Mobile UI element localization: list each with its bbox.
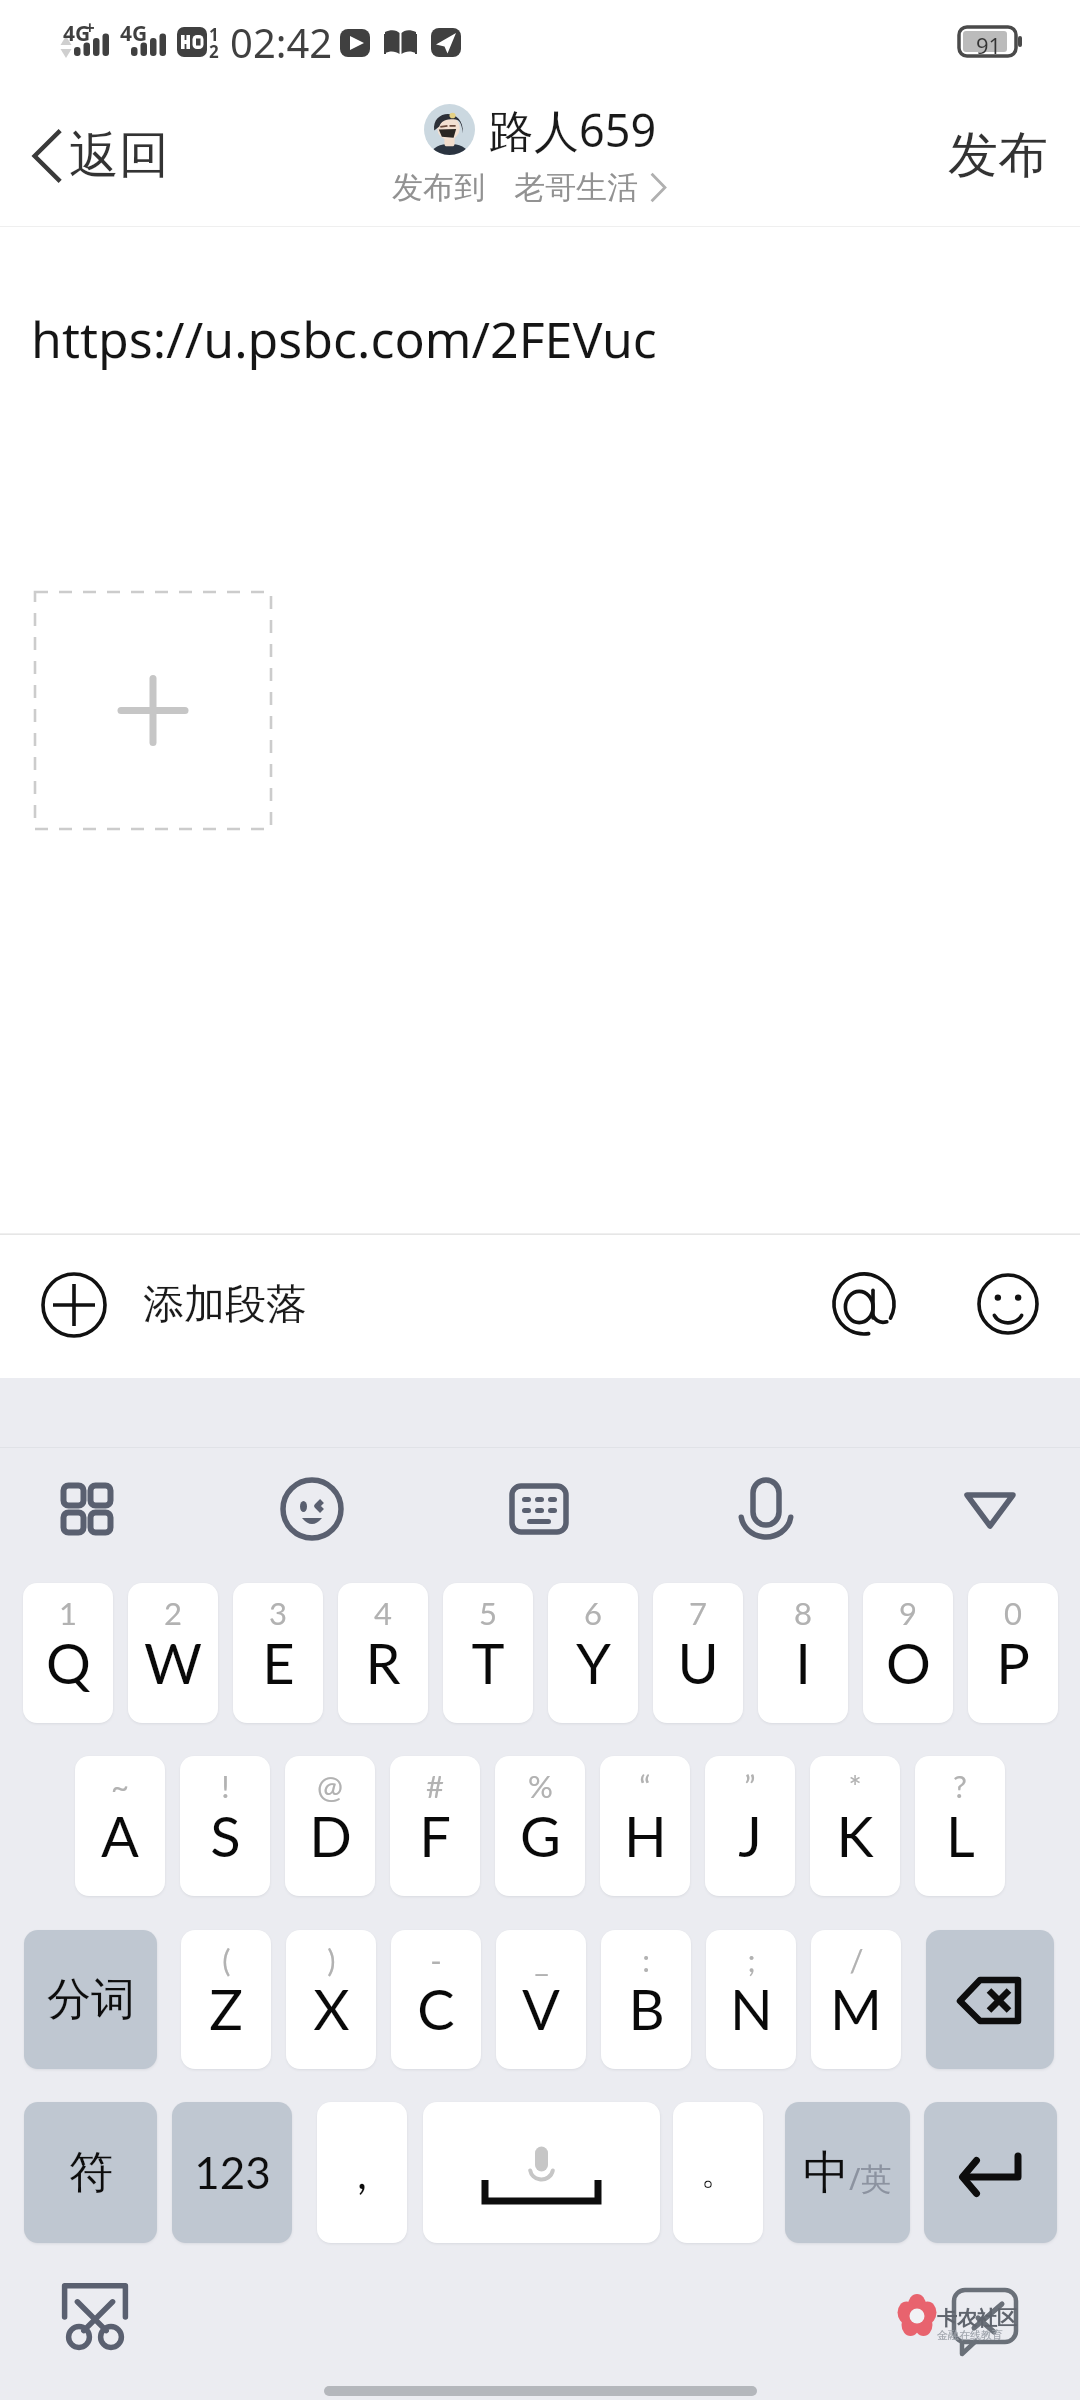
- staticText: 4G: [120, 19, 148, 48]
- button[interactable]: 符: [24, 2102, 157, 2243]
- staticText: S: [210, 1802, 241, 1869]
- staticText: A: [101, 1802, 139, 1869]
- button[interactable]: :: [601, 1930, 691, 2069]
- staticText: 老哥生活: [514, 168, 638, 207]
- button[interactable]: !: [180, 1756, 270, 1896]
- staticText: 符: [69, 2145, 113, 2200]
- button[interactable]: ?: [915, 1756, 1005, 1896]
- button[interactable]: ;: [706, 1930, 796, 2069]
- button[interactable]: Voice input: [721, 1402, 811, 1492]
- staticText: O: [886, 1629, 931, 1696]
- staticText: 02:42: [230, 15, 333, 69]
- staticText: ~: [111, 1767, 129, 1804]
- button[interactable]: 4: [338, 1583, 428, 1723]
- button[interactable]: 6: [548, 1583, 638, 1723]
- button[interactable]: [926, 1930, 1054, 2069]
- staticText: :: [642, 1941, 650, 1978]
- staticText: E: [262, 1629, 295, 1696]
- button[interactable]: [924, 2102, 1057, 2243]
- staticText: ): [327, 1941, 336, 1978]
- staticText: ;: [747, 1941, 756, 1978]
- button[interactable]: 3: [233, 1583, 323, 1723]
- button[interactable]: 5: [443, 1583, 533, 1723]
- staticText: 2: [164, 1594, 182, 1631]
- staticText: 发布到: [392, 168, 485, 207]
- button[interactable]: Emoji: [267, 1402, 357, 1492]
- staticText: K: [836, 1802, 874, 1869]
- staticText: *: [848, 1767, 862, 1804]
- button[interactable]: 1: [23, 1583, 113, 1723]
- button[interactable]: /: [811, 1930, 901, 2069]
- staticText: M: [830, 1975, 882, 2042]
- staticText: W: [144, 1629, 202, 1696]
- button[interactable]: 0: [968, 1583, 1058, 1723]
- staticText: B: [628, 1975, 665, 2042]
- button[interactable]: %: [495, 1756, 585, 1896]
- button[interactable]: 9: [863, 1583, 953, 1723]
- button[interactable]: 2: [128, 1583, 218, 1723]
- button[interactable]: ”: [705, 1756, 795, 1896]
- staticText: L: [946, 1802, 975, 1869]
- staticText: 2: [209, 40, 219, 63]
- staticText: F: [419, 1802, 451, 1869]
- staticText: N: [730, 1975, 773, 2042]
- staticText: D: [309, 1802, 352, 1869]
- staticText: /: [849, 1941, 864, 1978]
- button[interactable]: Emoji: [968, 1264, 1048, 1344]
- staticText: 1: [59, 1594, 77, 1631]
- button[interactable]: Add image: [35, 592, 271, 829]
- staticText: 0: [1004, 1594, 1022, 1631]
- button[interactable]: 7: [653, 1583, 743, 1723]
- button[interactable]: 发布: [918, 104, 1080, 207]
- button[interactable]: 8: [758, 1583, 848, 1723]
- button[interactable]: 。: [673, 2102, 763, 2243]
- button[interactable]: 返回: [0, 104, 189, 207]
- staticText: ?: [953, 1767, 967, 1804]
- staticText: 卡农社区: [937, 2306, 1017, 2331]
- button[interactable]: *: [810, 1756, 900, 1896]
- button[interactable]: Keyboard layouts: [42, 1402, 132, 1492]
- staticText: 91: [976, 30, 1002, 60]
- button[interactable]: 添加段落: [0, 1254, 331, 1356]
- button[interactable]: (: [181, 1930, 271, 2069]
- button[interactable]: Keyboard: [494, 1402, 584, 1492]
- button[interactable]: “: [600, 1756, 690, 1896]
- staticText: https://u.psbc.com/2FEVuc: [31, 305, 657, 373]
- button[interactable]: ~: [75, 1756, 165, 1896]
- staticText: I: [795, 1629, 811, 1696]
- button[interactable]: Mention: [824, 1264, 904, 1344]
- button[interactable]: [423, 2102, 660, 2243]
- staticText: 123: [194, 2146, 271, 2199]
- staticText: 3: [269, 1594, 287, 1631]
- button[interactable]: #: [390, 1756, 480, 1896]
- staticText: R: [365, 1629, 401, 1696]
- staticText: Y: [576, 1629, 611, 1696]
- button[interactable]: _: [496, 1930, 586, 2069]
- staticText: _: [534, 1941, 549, 1978]
- staticText: 4: [374, 1594, 392, 1631]
- staticText: /英: [849, 2157, 892, 2199]
- button[interactable]: ,: [317, 2102, 407, 2243]
- staticText: (: [222, 1941, 231, 1978]
- staticText: Z: [209, 1975, 243, 2042]
- staticText: %: [528, 1767, 553, 1804]
- staticText: V: [522, 1975, 560, 2042]
- staticText: 分词: [47, 1972, 135, 2027]
- staticText: 6: [584, 1594, 602, 1631]
- button[interactable]: Clipboard: [55, 2273, 135, 2353]
- button[interactable]: @: [285, 1756, 375, 1896]
- button[interactable]: 发布到: [392, 168, 667, 207]
- staticText: G: [520, 1802, 561, 1869]
- staticText: +: [85, 16, 95, 39]
- staticText: 金融在线教育: [937, 2328, 1003, 2342]
- button[interactable]: 分词: [24, 1930, 157, 2069]
- button[interactable]: ): [286, 1930, 376, 2069]
- button[interactable]: 123: [172, 2102, 292, 2243]
- staticText: 8: [794, 1594, 812, 1631]
- staticText: -: [430, 1941, 442, 1978]
- button[interactable]: 中: [785, 2102, 910, 2243]
- button[interactable]: -: [391, 1930, 481, 2069]
- staticText: 返回: [69, 124, 169, 187]
- staticText: 5: [479, 1594, 497, 1631]
